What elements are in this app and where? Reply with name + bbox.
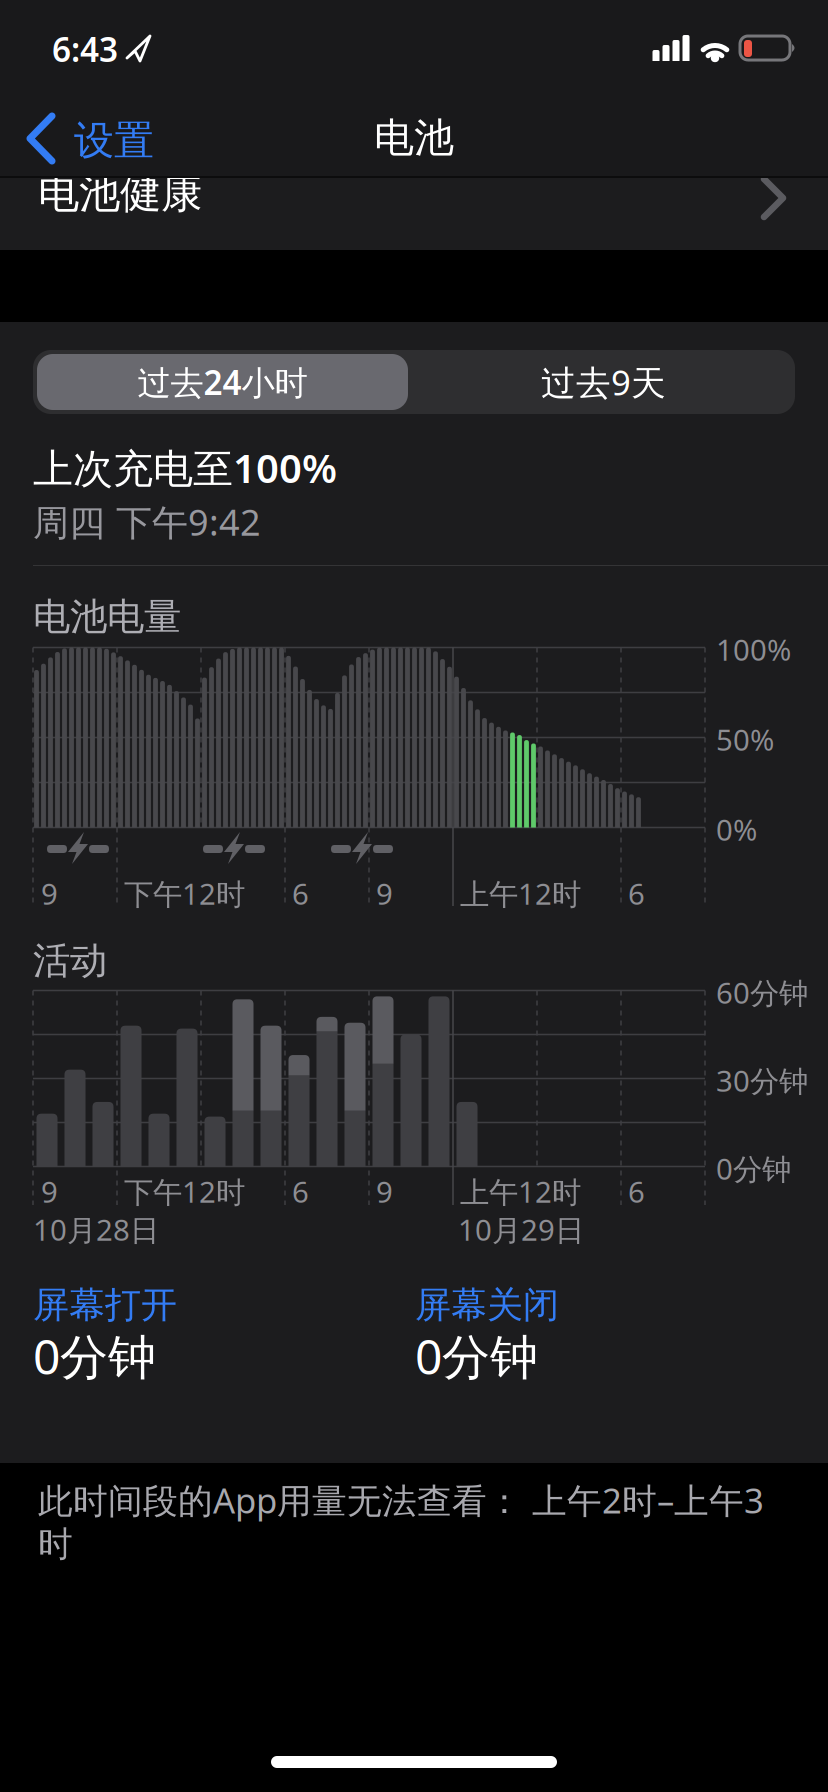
staticText: 60分钟 [716,973,808,1012]
staticText: 此时间段的App用量无法查看： 上午2时–上午3时 [38,1477,764,1566]
staticText: 6:43 [52,27,118,71]
staticText: 6 [292,1172,309,1211]
staticText: 6 [628,874,645,913]
staticText: 0分钟 [33,1324,156,1388]
staticText: 屏幕关闭 [415,1283,559,1327]
button[interactable]: 过去24小时 [37,354,408,410]
staticText: 电池健康 [38,168,202,219]
staticText: 上次充电至100% [33,441,337,494]
staticText: 下午12时 [124,874,245,913]
staticText: 0分钟 [716,1149,791,1188]
staticText: 电池电量 [33,594,181,640]
staticText: 9 [376,874,393,913]
staticText: 设置 [74,116,154,165]
staticText: 电池 [374,113,454,162]
staticText: 0分钟 [415,1324,538,1388]
button[interactable]: 屏幕打开 [33,1283,333,1393]
staticText: 6 [292,874,309,913]
button[interactable]: 设置 [0,102,180,178]
staticText: 上午12时 [460,874,581,913]
staticText: 9 [41,1172,58,1211]
staticText: 屏幕打开 [33,1283,177,1327]
staticText: 过去9天 [541,359,666,405]
staticText: 100% [716,630,791,669]
staticText: 过去24小时 [137,360,307,404]
staticText: 0% [716,810,757,849]
staticText: 上午12时 [460,1172,581,1211]
staticText: 9 [41,874,58,913]
staticText: 10月29日 [458,1210,584,1249]
button[interactable]: 电池健康 [0,160,828,250]
staticText: 6 [628,1172,645,1211]
staticText: 50% [716,720,774,759]
staticText: 30分钟 [716,1061,808,1100]
staticText: 9 [376,1172,393,1211]
staticText: 周四 下午9:42 [33,498,261,546]
button[interactable]: 过去9天 [412,350,795,414]
staticText: 10月28日 [33,1210,159,1249]
staticText: 下午12时 [124,1172,245,1211]
button[interactable]: 屏幕关闭 [415,1283,715,1393]
staticText: 活动 [33,938,107,984]
